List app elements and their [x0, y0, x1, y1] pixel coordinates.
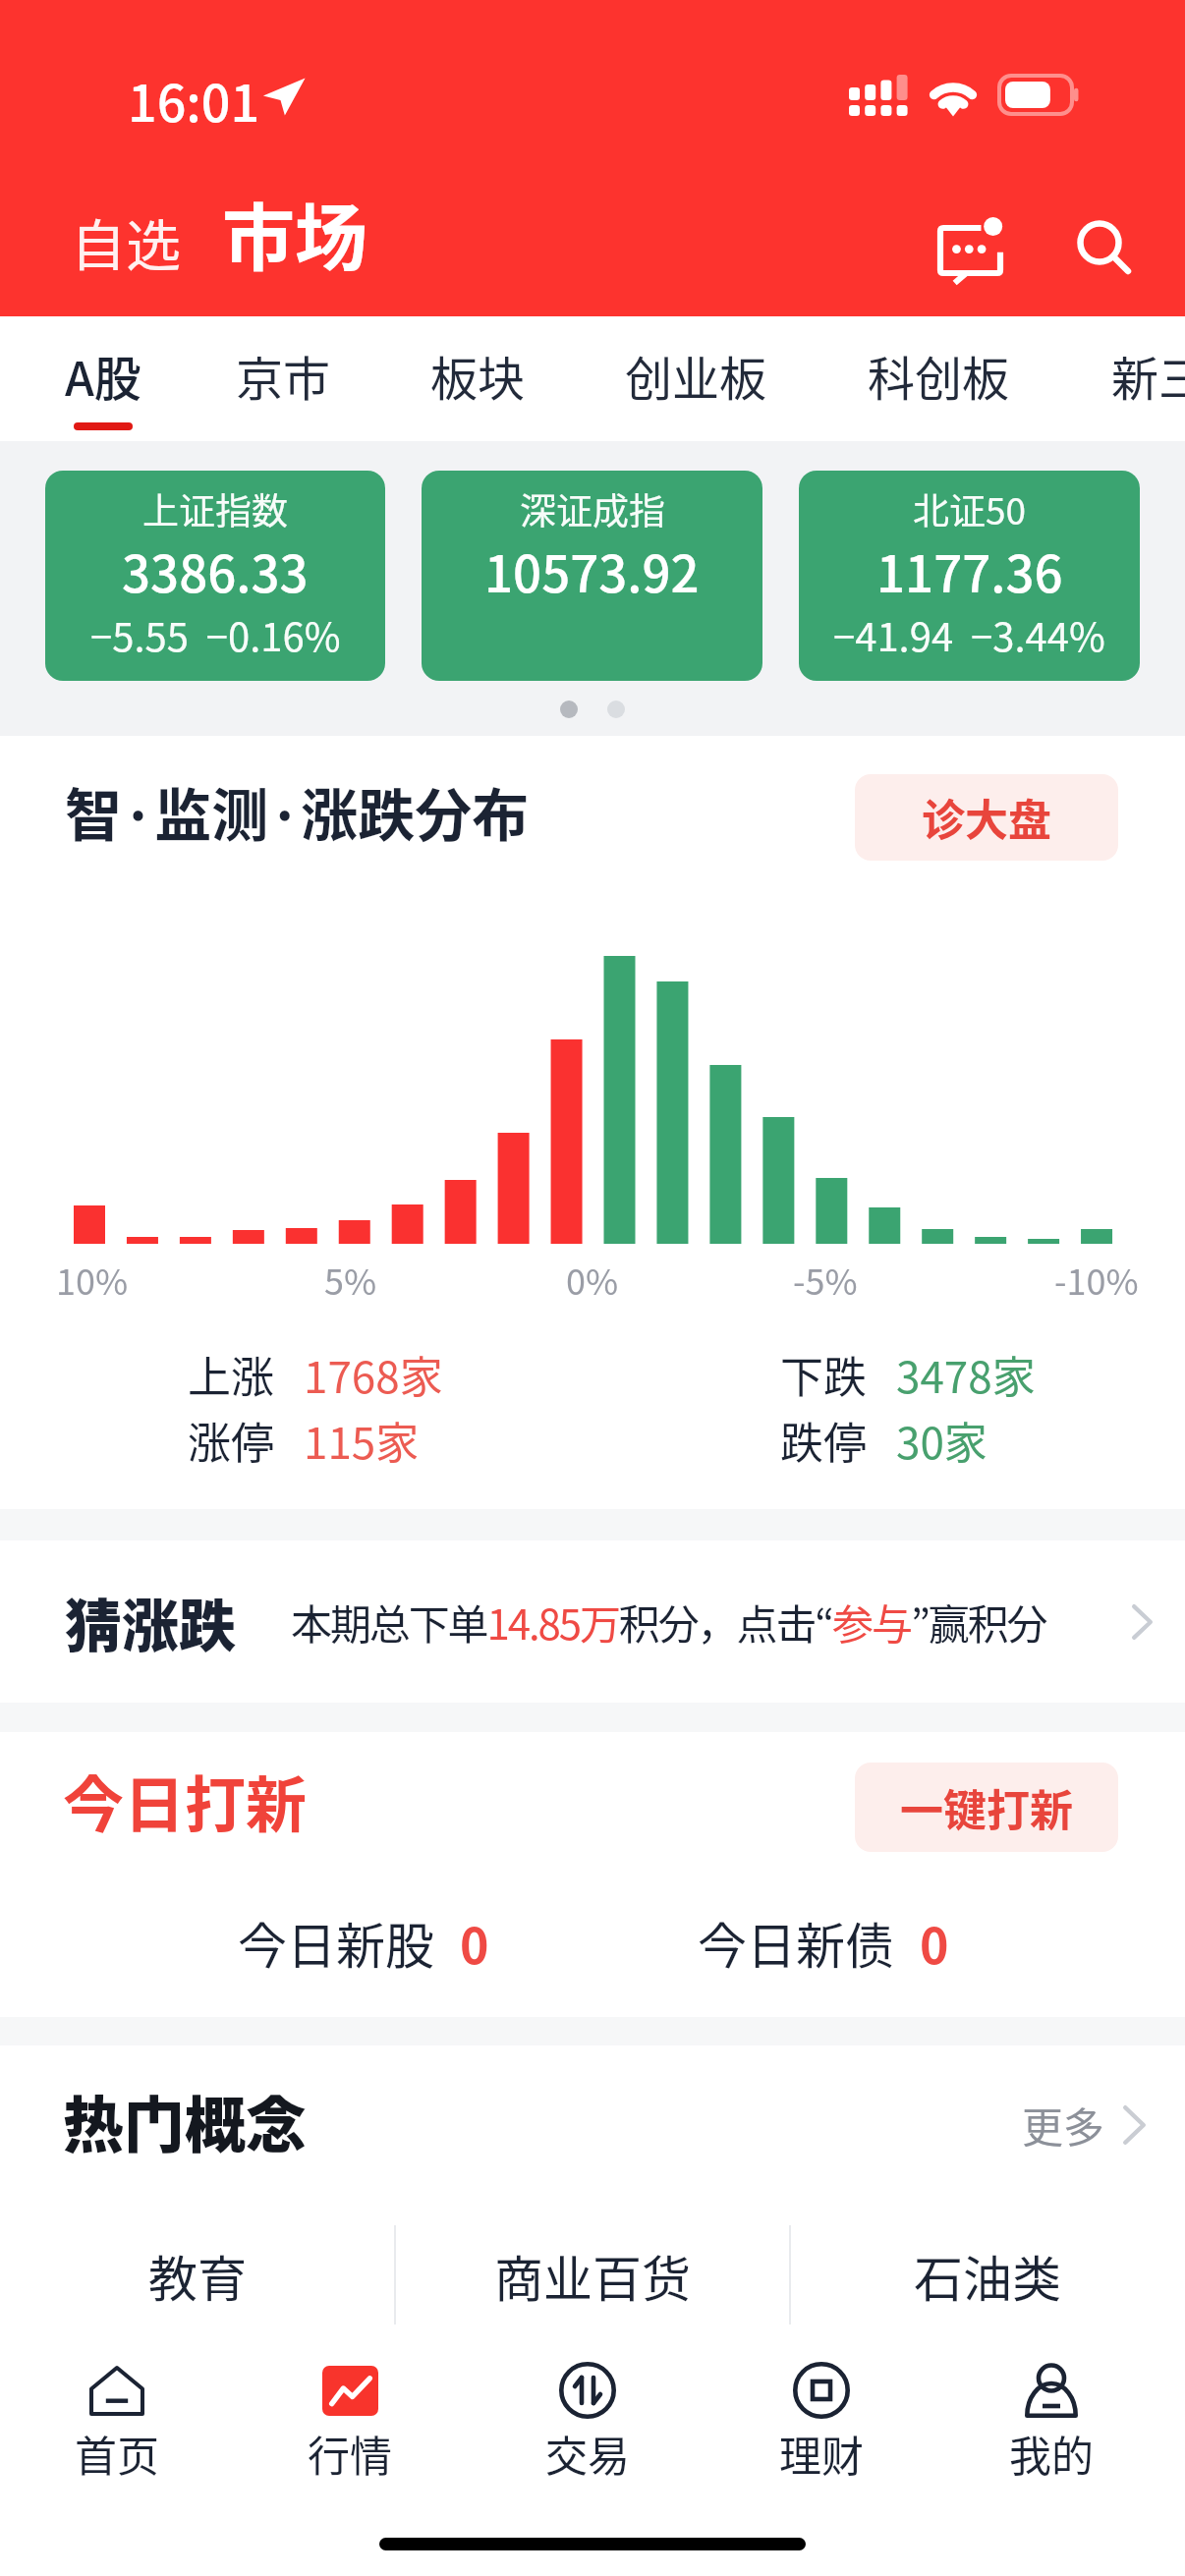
staticText: A股 [65, 341, 141, 410]
staticText: 新三 [1111, 341, 1185, 410]
staticText: 智·监测·涨跌分布 [65, 770, 530, 853]
button[interactable]: 板块 [398, 316, 557, 441]
staticText: 5% [324, 1254, 377, 1305]
button[interactable]: 商业百货 [395, 2203, 790, 2348]
staticText: 跌停 [780, 1409, 867, 1472]
staticText: 热门概念 [63, 2077, 308, 2165]
staticText: 0% [566, 1254, 619, 1305]
staticText: 10% [56, 1254, 129, 1305]
button[interactable]: 深证成指 [422, 471, 762, 681]
button[interactable]: 上证指数 [45, 471, 385, 681]
button[interactable]: 创业板 [593, 316, 798, 441]
staticText: -5% [793, 1254, 858, 1305]
staticText: 3478家 [896, 1343, 1036, 1406]
staticText: 教育 [148, 2240, 247, 2311]
staticText: 创业板 [625, 341, 767, 410]
staticText: 石油类 [914, 2240, 1061, 2311]
button[interactable]: 交易 [480, 2348, 696, 2505]
button[interactable]: Search [1054, 198, 1157, 301]
staticText: 0 [920, 1907, 949, 1978]
button[interactable]: Messages [921, 200, 1027, 303]
staticText: 今日打新 [63, 1757, 308, 1845]
staticText: 本期总下单14.85万积分，点击“参与”赢积分 [291, 1592, 1046, 1652]
staticText: 16:01 [128, 63, 260, 137]
button[interactable]: 市场 [204, 162, 385, 303]
staticText: 涨停 [188, 1409, 274, 1472]
button[interactable]: 我的 [943, 2348, 1159, 2505]
button[interactable]: 诊大盘 [855, 774, 1118, 861]
staticText: −5.55 −0.16% [90, 606, 341, 663]
staticText: 交易 [545, 2423, 630, 2484]
staticText: 3386.33 [122, 534, 309, 607]
staticText: 30家 [896, 1409, 987, 1472]
staticText: 上涨 [188, 1343, 274, 1406]
staticText: 深证成指 [520, 482, 665, 535]
staticText: 科创板 [868, 341, 1010, 410]
button[interactable]: 自选 [51, 182, 200, 301]
button[interactable]: 猜涨跌 [0, 1540, 1185, 1703]
button[interactable]: 更多 [1016, 2089, 1152, 2160]
button[interactable]: A股 [24, 316, 183, 441]
staticText: 首页 [75, 2423, 159, 2484]
button[interactable]: 首页 [9, 2348, 225, 2505]
staticText: 今日新债 [698, 1907, 894, 1978]
staticText: 自选 [71, 201, 181, 281]
staticText: −41.94 −3.44% [833, 606, 1105, 663]
staticText: 1177.36 [876, 534, 1063, 607]
button[interactable]: 行情 [242, 2348, 458, 2505]
staticText: 10573.92 [484, 534, 700, 607]
staticText: 猜涨跌 [65, 1581, 237, 1663]
staticText: 更多 [1022, 2095, 1105, 2155]
staticText: 下跌 [780, 1343, 867, 1406]
staticText: 商业百货 [494, 2240, 691, 2311]
staticText: 一键打新 [900, 1776, 1073, 1839]
staticText: 115家 [304, 1409, 420, 1472]
staticText: 我的 [1009, 2423, 1094, 2484]
staticText: 京市 [236, 341, 331, 410]
button[interactable]: 理财 [713, 2348, 930, 2505]
staticText: 北证50 [913, 482, 1027, 535]
staticText: 行情 [308, 2423, 392, 2484]
staticText: 理财 [779, 2423, 864, 2484]
staticText: -10% [1054, 1254, 1139, 1305]
button[interactable]: 京市 [203, 316, 363, 441]
button[interactable]: 一键打新 [855, 1763, 1118, 1852]
staticText: 板块 [430, 341, 526, 410]
button[interactable]: 石油类 [790, 2203, 1185, 2348]
staticText: 上证指数 [142, 482, 288, 535]
staticText: 市场 [222, 180, 367, 285]
button[interactable]: 北证50 [799, 471, 1140, 681]
staticText: 诊大盘 [922, 786, 1051, 849]
button[interactable]: 教育 [0, 2203, 395, 2348]
button[interactable]: 新三 [1079, 316, 1185, 441]
staticText: 0 [460, 1907, 489, 1978]
staticText: 今日新股 [238, 1907, 434, 1978]
button[interactable]: 科创板 [836, 316, 1041, 441]
staticText: 1768家 [304, 1343, 443, 1406]
